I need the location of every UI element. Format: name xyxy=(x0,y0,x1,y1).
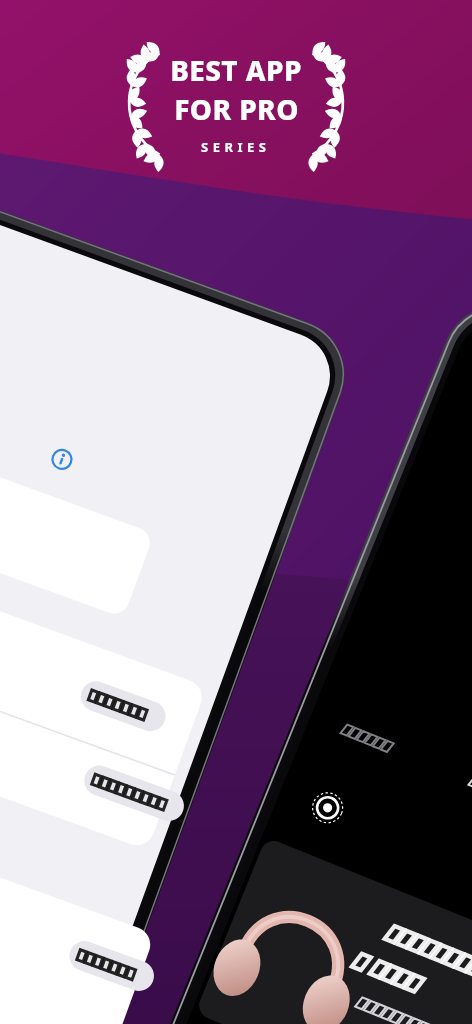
staticText: FOR PRO xyxy=(174,90,299,128)
staticText: BEST APP xyxy=(170,51,302,89)
staticText: SERIES xyxy=(201,138,271,156)
button[interactable]: Best App For Pro Series award badge xyxy=(106,44,366,162)
